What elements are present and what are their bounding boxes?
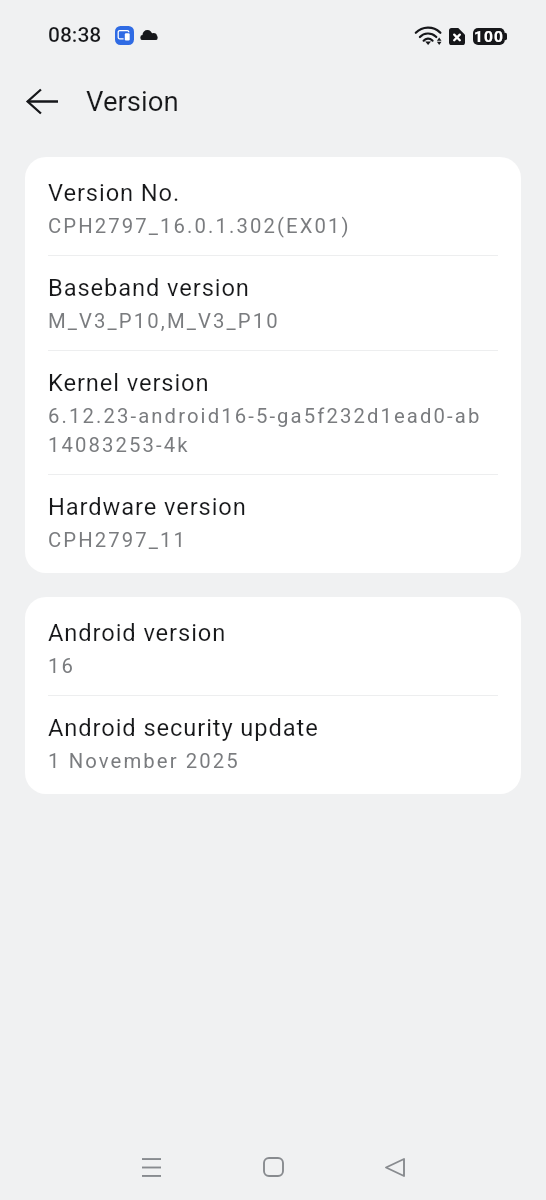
staticText: 16 (48, 654, 76, 678)
staticText: CPH2797_16.0.1.302(EX01) (48, 214, 351, 238)
staticText: Baseband version (48, 274, 250, 302)
button[interactable]: Kernel version (25, 351, 521, 474)
staticText: Kernel version (48, 369, 210, 397)
staticText: 08:38 (48, 23, 102, 48)
button[interactable]: Baseband version (25, 256, 521, 350)
button[interactable]: Back (16, 75, 68, 127)
staticText: Android version (48, 619, 227, 647)
staticText: Android security update (48, 714, 319, 742)
button[interactable]: Android version (25, 601, 521, 695)
button[interactable]: Version No. (25, 161, 521, 255)
staticText: 6.12.23-android16-5-ga5f232d1ead0-ab 140… (48, 404, 482, 457)
staticText: Version (86, 85, 179, 117)
button[interactable]: Android security update (25, 696, 521, 790)
button[interactable]: Hardware version (25, 475, 521, 569)
staticText: M_V3_P10,M_V3_P10 (48, 309, 280, 333)
staticText: CPH2797_11 (48, 528, 188, 552)
staticText: 100 (474, 28, 504, 45)
staticText: Version No. (48, 179, 181, 207)
button[interactable]: Recent apps (120, 1136, 182, 1198)
button[interactable]: Back (364, 1136, 426, 1198)
button[interactable]: Home (242, 1136, 304, 1198)
staticText: 1 November 2025 (48, 749, 240, 773)
staticText: Hardware version (48, 493, 247, 521)
